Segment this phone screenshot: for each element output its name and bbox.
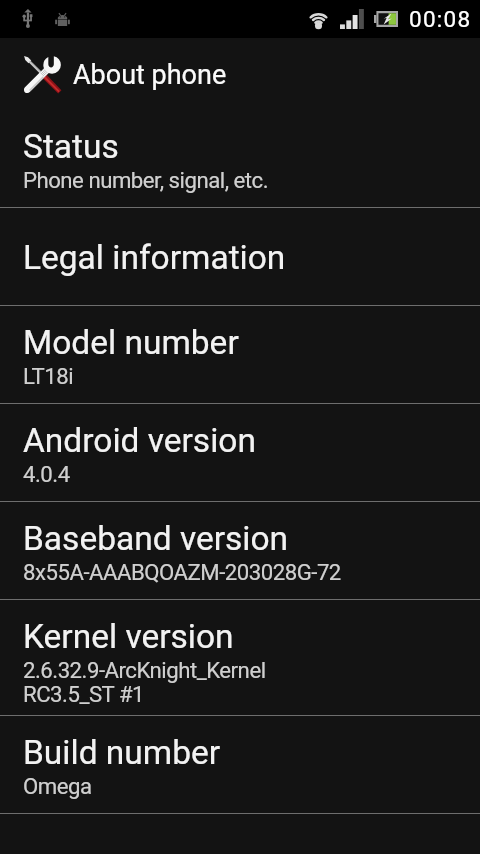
staticText: 8x55A-AAABQOAZM-203028G-72 [23,559,341,585]
staticText: LT18i [23,363,74,389]
button[interactable]: Legal information [0,208,480,306]
staticText: Legal information [23,238,286,277]
staticText: Model number [23,323,239,362]
staticText: 00:08 [409,6,472,32]
staticText: 2.6.32.9-ArcKnight_Kernel RC3.5_ST #1 [23,657,266,707]
staticText: 4.0.4 [23,461,70,487]
staticText: Status [23,127,119,166]
button[interactable]: Baseband version [0,502,480,600]
staticText: Omega [23,773,92,799]
other: Wi-Fi [307,8,330,29]
staticText: Phone number, signal, etc. [23,167,268,193]
staticText: About phone [73,59,227,91]
button[interactable]: Model number [0,306,480,404]
other: Battery charging [374,11,398,27]
button[interactable]: About phone [0,38,480,110]
button[interactable]: Android version [0,404,480,502]
button[interactable]: Kernel version [0,600,480,716]
staticText: Baseband version [23,519,289,558]
button[interactable]: Status [0,110,480,208]
staticText: Build number [23,733,221,772]
button[interactable]: Build number [0,716,480,814]
staticText: Android version [23,421,256,460]
staticText: Kernel version [23,617,234,656]
other: Mobile signal [340,9,364,29]
